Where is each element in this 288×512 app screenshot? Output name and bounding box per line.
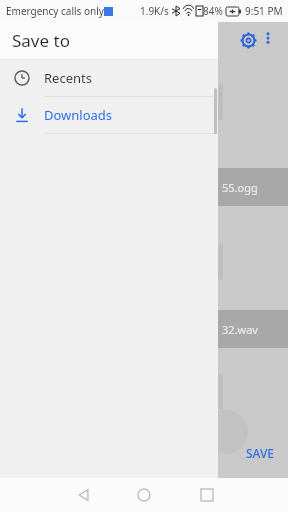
staticText: 1.9K/s bbox=[140, 4, 169, 18]
staticText: Emergency calls only bbox=[6, 4, 104, 18]
button[interactable]: Settings bbox=[234, 26, 262, 54]
button[interactable]: Downloads bbox=[0, 97, 218, 133]
staticText: 84% bbox=[203, 4, 223, 18]
staticText: Save to bbox=[12, 29, 70, 52]
button[interactable]: Recent apps bbox=[195, 483, 219, 507]
staticText: Downloads bbox=[44, 106, 113, 124]
staticText: 55.ogg bbox=[222, 180, 258, 195]
button[interactable]: More options bbox=[256, 26, 280, 50]
staticText: 9:51 PM bbox=[245, 4, 283, 18]
button[interactable]: SAVE bbox=[232, 440, 288, 466]
staticText: SAVE bbox=[246, 445, 275, 461]
staticText: Recents bbox=[44, 69, 92, 87]
button[interactable]: Recents bbox=[0, 60, 218, 96]
button[interactable]: Back bbox=[72, 483, 96, 507]
staticText: 32.wav bbox=[222, 322, 258, 337]
button[interactable]: Home bbox=[132, 483, 156, 507]
